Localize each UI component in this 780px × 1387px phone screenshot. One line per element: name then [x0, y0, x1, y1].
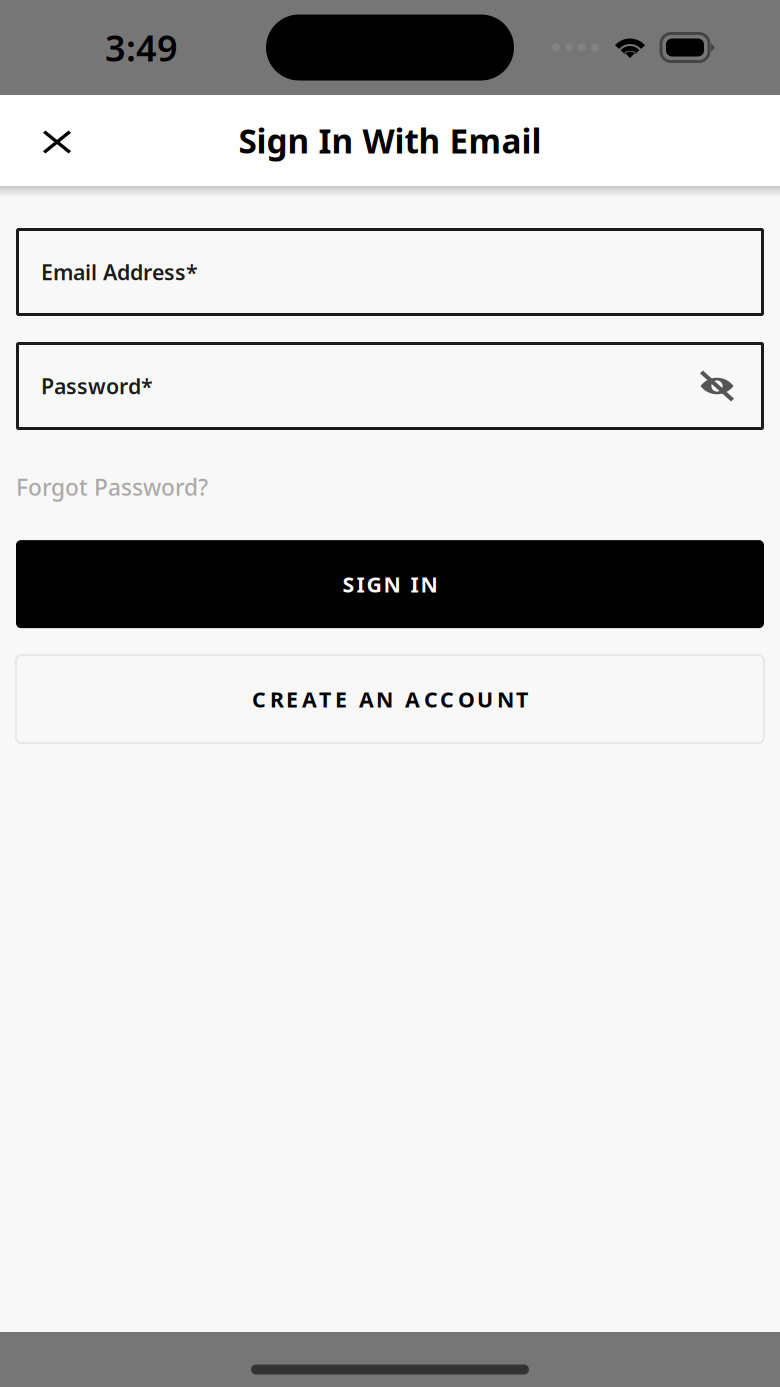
staticText: Password*	[41, 372, 153, 400]
staticText: S I G N I N	[342, 570, 437, 598]
button[interactable]: S I G N I N	[16, 540, 764, 628]
button[interactable]: Close	[23, 105, 91, 175]
button[interactable]: C R E A T E A N A C C O U N T	[16, 655, 764, 743]
staticText: Email Address*	[41, 258, 198, 286]
button[interactable]: Forgot Password?	[16, 466, 208, 508]
staticText: C R E A T E A N A C C O U N T	[252, 685, 528, 713]
staticText: 3:49	[105, 24, 178, 71]
staticText: Sign In With Email	[238, 118, 541, 163]
staticText: Forgot Password?	[16, 472, 208, 502]
button[interactable]: Show password	[695, 364, 739, 408]
